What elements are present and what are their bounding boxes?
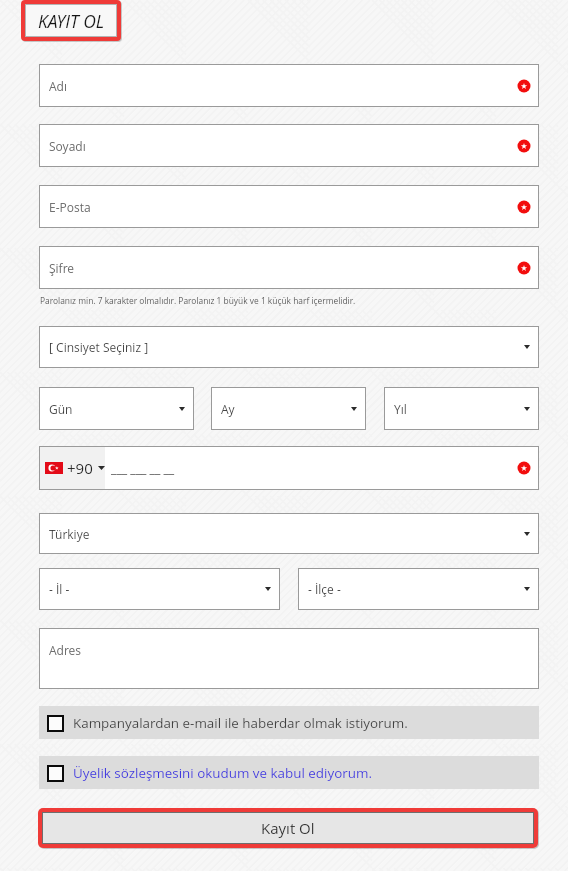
other: Required field — [517, 139, 531, 153]
staticText: KAYIT OL — [38, 9, 105, 33]
staticText: Adres — [49, 642, 82, 658]
button[interactable]: Kampanyalardan e-mail ile haberdar olmak… — [39, 706, 539, 739]
button[interactable]: E-Posta — [39, 185, 539, 228]
button[interactable]: Gün — [39, 387, 194, 430]
button[interactable]: Select country code — [39, 446, 105, 490]
button[interactable]: Kayıt Ol — [43, 813, 533, 843]
staticText: Parolanız min. 7 karakter olmalıdır. Par… — [40, 295, 356, 306]
staticText: Yıl — [394, 401, 407, 417]
button[interactable]: [ Cinsiyet Seçiniz ] — [39, 326, 539, 368]
button[interactable]: KAYIT OL — [26, 5, 116, 36]
button[interactable]: Şifre — [39, 246, 539, 289]
staticText: - İlçe - — [308, 581, 341, 597]
staticText: Adı — [49, 78, 67, 94]
staticText: ___ ___ __ __ — [111, 460, 175, 476]
staticText: Ay — [221, 401, 235, 417]
button[interactable]: Üyelik sözleşmesini okudum ve kabul ediy… — [39, 756, 539, 789]
button[interactable]: - İlçe - — [298, 568, 539, 610]
staticText: Kayıt Ol — [261, 818, 315, 838]
staticText: Şifre — [49, 260, 75, 276]
staticText: +90 — [67, 458, 93, 478]
staticText: Soyadı — [49, 138, 86, 154]
other: Required field — [517, 79, 531, 93]
button[interactable]: - İl - — [39, 568, 280, 610]
button[interactable]: Soyadı — [39, 124, 539, 167]
button[interactable]: Türkiye — [39, 513, 539, 554]
staticText: Türkiye — [49, 526, 90, 542]
other: Required field — [517, 200, 531, 214]
other: Required field — [517, 261, 531, 275]
staticText: Gün — [49, 401, 73, 417]
staticText: Üyelik sözleşmesini okudum ve kabul ediy… — [73, 764, 372, 782]
staticText: - İl - — [49, 581, 70, 597]
button[interactable]: Ay — [211, 387, 366, 430]
button[interactable]: Adı — [39, 64, 539, 107]
button[interactable]: Adres — [39, 628, 539, 689]
button[interactable]: Yıl — [384, 387, 539, 430]
staticText: Kampanyalardan e-mail ile haberdar olmak… — [73, 714, 408, 732]
other: Required field — [517, 461, 531, 475]
staticText: E-Posta — [49, 199, 91, 215]
staticText: [ Cinsiyet Seçiniz ] — [49, 339, 149, 355]
